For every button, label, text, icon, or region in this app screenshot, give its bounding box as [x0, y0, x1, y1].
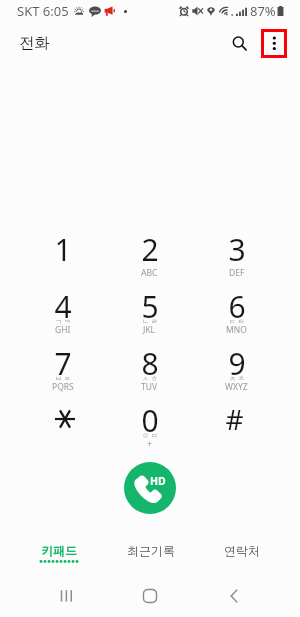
- button[interactable]: More options: [261, 28, 287, 58]
- button[interactable]: 0: [106, 400, 193, 457]
- staticText: 9: [228, 343, 246, 384]
- staticText: WXYZ: [225, 381, 248, 393]
- staticText: 4: [54, 286, 72, 327]
- staticText: ㄱ ㅋ: [55, 317, 71, 327]
- staticText: 6: [228, 286, 246, 327]
- button[interactable]: [20, 400, 106, 457]
- button[interactable]: #: [193, 400, 280, 457]
- button[interactable]: 1: [20, 229, 106, 286]
- button[interactable]: 9: [193, 343, 280, 400]
- staticText: 연락처: [224, 543, 260, 558]
- button[interactable]: 5: [106, 286, 193, 343]
- staticText: TUV: [141, 381, 158, 393]
- staticText: GHI: [55, 324, 71, 336]
- staticText: ABC: [141, 267, 158, 279]
- staticText: ㅇ ㅁ: [142, 431, 158, 441]
- button[interactable]: 최근기록: [105, 538, 196, 568]
- staticText: 2: [141, 229, 159, 270]
- staticText: SKT 6:05: [17, 2, 69, 20]
- staticText: 7: [54, 343, 72, 384]
- staticText: JKL: [143, 324, 156, 336]
- button[interactable]: Home: [108, 578, 192, 613]
- button[interactable]: 8: [106, 343, 193, 400]
- staticText: 최근기록: [127, 543, 175, 558]
- button[interactable]: Back: [192, 578, 276, 613]
- staticText: ㅅ ㅎ: [142, 374, 158, 384]
- staticText: 0: [141, 400, 159, 441]
- staticText: ㄷ ㅌ: [229, 317, 245, 327]
- button[interactable]: 키패드: [13, 538, 105, 568]
- staticText: ㄴ ㄹ: [142, 317, 158, 327]
- staticText: 87%: [250, 2, 276, 20]
- staticText: HD: [150, 474, 166, 488]
- staticText: 1: [54, 229, 72, 270]
- button[interactable]: 7: [20, 343, 106, 400]
- staticText: 8: [141, 343, 159, 384]
- button[interactable]: Call: [124, 462, 176, 514]
- button[interactable]: 연락처: [196, 538, 287, 568]
- staticText: 3: [228, 229, 246, 270]
- button[interactable]: Recents: [24, 578, 108, 613]
- button[interactable]: 3: [193, 229, 280, 286]
- staticText: 전화: [19, 33, 50, 53]
- staticText: +: [147, 438, 152, 450]
- staticText: 5: [141, 286, 159, 327]
- button[interactable]: 4: [20, 286, 106, 343]
- staticText: #: [225, 400, 244, 438]
- staticText: 키패드: [41, 543, 77, 558]
- button[interactable]: 2: [106, 229, 193, 286]
- staticText: MNO: [226, 324, 247, 336]
- button[interactable]: Search: [224, 28, 254, 58]
- staticText: PQRS: [52, 381, 74, 393]
- staticText: ㅂ ㅍ: [55, 374, 71, 384]
- staticText: ㅈ ㅊ: [229, 374, 245, 384]
- button[interactable]: 6: [193, 286, 280, 343]
- staticText: DEF: [229, 267, 245, 279]
